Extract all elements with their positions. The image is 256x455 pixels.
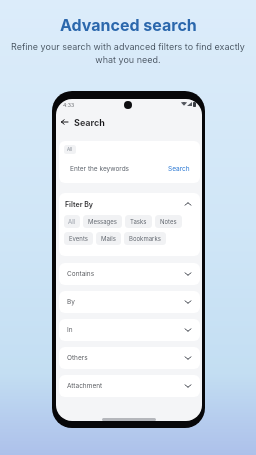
staticText: Attachment [67, 382, 103, 390]
button[interactable]: In [59, 319, 200, 341]
staticText: Search [168, 165, 190, 173]
button[interactable]: Attachment [59, 375, 200, 397]
staticText: Bookmarks [129, 235, 161, 242]
button[interactable]: All [64, 215, 80, 228]
staticText: All [67, 147, 73, 153]
staticText: Refine your search with advanced filters… [11, 41, 245, 65]
staticText: Others [67, 354, 88, 362]
button[interactable]: Notes [155, 215, 182, 228]
staticText: All [68, 218, 76, 225]
staticText: Search [74, 117, 105, 128]
button[interactable]: By [59, 291, 200, 313]
staticText: Contains [67, 270, 95, 278]
button[interactable]: Contains [59, 263, 200, 285]
button[interactable]: Filter By [59, 193, 200, 215]
button[interactable]: Events [64, 232, 93, 245]
staticText: Events [69, 235, 88, 242]
staticText: Tasks [130, 218, 147, 225]
button[interactable]: Tasks [125, 215, 152, 228]
staticText: 4:33 [63, 102, 75, 108]
button[interactable]: Bookmarks [124, 232, 166, 245]
button[interactable]: Search [168, 165, 190, 173]
staticText: Advanced search [60, 15, 197, 34]
staticText: Messages [88, 218, 117, 225]
staticText: Mails [101, 235, 116, 242]
staticText: Enter the keywords [70, 165, 130, 173]
button[interactable]: Others [59, 347, 200, 369]
button[interactable]: Back [58, 116, 70, 128]
staticText: In [67, 326, 73, 334]
button[interactable]: Messages [83, 215, 122, 228]
button[interactable]: Mails [96, 232, 121, 245]
staticText: Notes [160, 218, 177, 225]
staticText: By [67, 298, 75, 306]
staticText: Filter By [65, 200, 94, 208]
button[interactable]: All [64, 145, 76, 154]
